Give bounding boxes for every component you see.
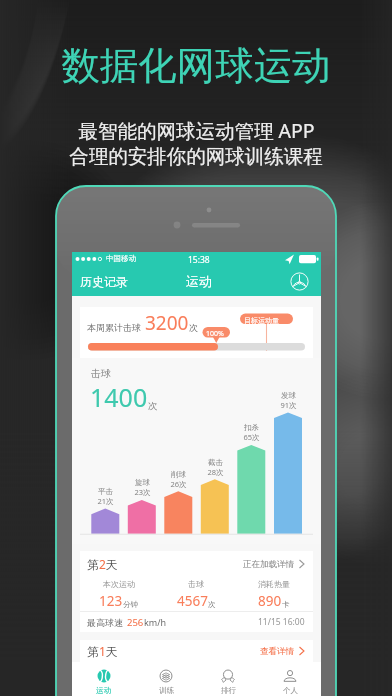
staticText: 平击 — [98, 487, 113, 496]
staticText: 91次 — [280, 400, 297, 410]
staticText: 消耗热量 — [258, 579, 290, 589]
staticText: 本次运动 — [103, 579, 135, 589]
button[interactable]: 历史记录 — [75, 266, 133, 296]
button[interactable]: 第2天 — [87, 551, 305, 577]
staticText: 第1天 — [87, 643, 118, 659]
staticText: 发球 — [281, 391, 296, 400]
staticText: 890 — [258, 592, 282, 610]
staticText: 4567 — [177, 592, 208, 610]
staticText: 本周累计击球 — [87, 322, 141, 333]
staticText: 正在加载详情 — [243, 559, 294, 570]
button[interactable]: 第1天 — [87, 640, 305, 662]
staticText: 卡 — [282, 600, 290, 609]
staticText: 256 — [127, 616, 144, 629]
staticText: 第2天 — [87, 556, 118, 572]
button[interactable]: 个人 — [259, 662, 321, 696]
staticText: 运动 — [96, 686, 111, 695]
button[interactable]: 排行 — [197, 662, 259, 696]
staticText: 21次 — [97, 496, 114, 506]
staticText: 击球 — [91, 367, 111, 380]
staticText: 削球 — [171, 470, 186, 479]
staticText: km/h — [144, 616, 167, 628]
staticText: 个人 — [283, 686, 298, 695]
button[interactable]: 训练 — [135, 662, 197, 696]
staticText: 排行 — [221, 686, 236, 695]
staticText: 次 — [208, 600, 216, 609]
staticText: 1400 — [90, 380, 148, 414]
staticText: 扣杀 — [244, 423, 259, 432]
staticText: 次 — [189, 322, 198, 333]
staticText: 123 — [99, 592, 123, 610]
button[interactable]: Settings — [290, 272, 309, 291]
staticText: 训练 — [159, 686, 174, 695]
staticText: 26次 — [170, 479, 187, 489]
staticText: 65次 — [243, 432, 260, 442]
staticText: 15:38 — [188, 254, 210, 266]
staticText: 目标运动量 — [244, 316, 279, 325]
staticText: 合理的安排你的网球训练课程 — [69, 144, 323, 169]
staticText: 100% — [206, 329, 224, 339]
staticText: 旋球 — [135, 478, 150, 487]
staticText: 运动 — [186, 273, 212, 289]
staticText: 23次 — [134, 487, 151, 497]
staticText: 中国移动 — [106, 254, 136, 263]
staticText: 击球 — [188, 579, 204, 589]
staticText: 最高球速 — [87, 617, 123, 628]
staticText: 分钟 — [123, 600, 138, 609]
staticText: 最智能的网球运动管理 APP — [78, 117, 315, 144]
staticText: 数据化网球运动 — [61, 42, 331, 91]
staticText: 历史记录 — [80, 274, 128, 289]
staticText: 11/15 16:00 — [258, 616, 305, 628]
button[interactable]: 运动 — [72, 662, 135, 696]
staticText: 次 — [148, 400, 158, 412]
staticText: 查看详情 — [260, 646, 294, 657]
staticText: 3200 — [145, 310, 189, 336]
staticText: 28次 — [207, 467, 224, 477]
staticText: 截击 — [208, 458, 223, 467]
